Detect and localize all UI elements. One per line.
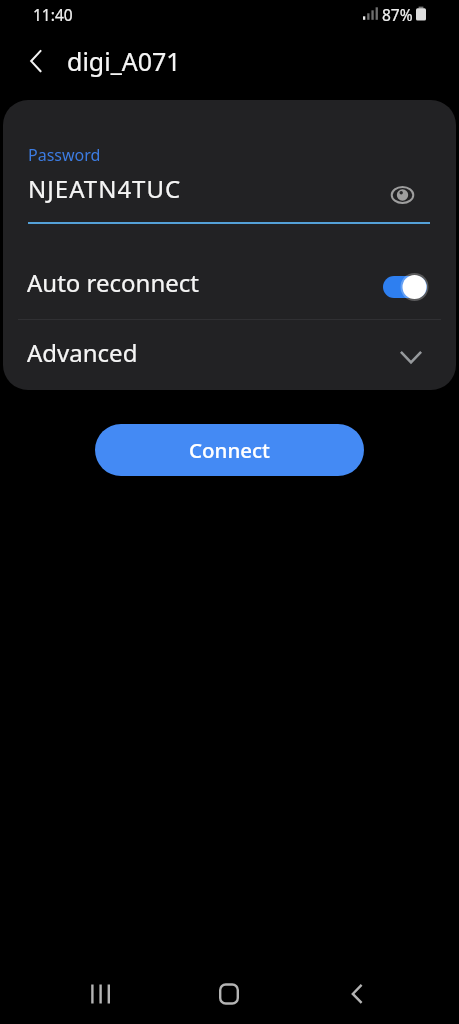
button[interactable]: Auto reconnect [3, 248, 456, 319]
staticText: Password [28, 144, 101, 166]
staticText: Auto reconnect [27, 266, 199, 299]
button[interactable]: Connect [95, 424, 364, 476]
staticText: NJEATN4TUC [28, 172, 182, 205]
button[interactable]: Advanced [3, 320, 456, 390]
staticText: 87% [382, 4, 413, 25]
staticText: digi_A071 [67, 44, 181, 78]
button[interactable] [201, 966, 257, 1022]
button[interactable] [383, 175, 423, 215]
button[interactable] [330, 966, 386, 1022]
staticText: Advanced [27, 336, 138, 369]
staticText: 11:40 [33, 4, 73, 25]
staticText: Connect [189, 436, 270, 464]
button[interactable] [72, 966, 128, 1022]
button[interactable] [8, 33, 64, 89]
